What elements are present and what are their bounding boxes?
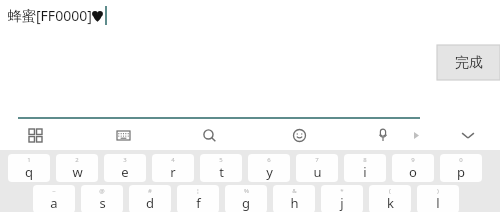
staticText: 6 [267,156,271,164]
staticText: ( [389,187,391,195]
button[interactable]: 完成 [437,45,500,80]
staticText: & [292,187,297,195]
staticText: o [409,163,417,181]
button[interactable]: Emoji [286,124,312,146]
staticText: a [50,194,58,212]
button[interactable]: ) [417,185,459,212]
staticText: @ [99,187,105,195]
staticText: # [148,187,152,195]
staticText: g [242,194,250,212]
staticText: s [99,194,106,212]
staticText: ~ [52,187,56,195]
staticText: i [363,163,367,181]
button[interactable]: 蜂蜜[FF0000] [8,6,107,25]
button[interactable]: % [225,185,267,212]
staticText: y [266,163,273,181]
staticText: j [340,194,344,212]
button[interactable]: ¦ [177,185,219,212]
button[interactable]: @ [81,185,123,212]
staticText: d [146,194,154,212]
button[interactable]: 9 [392,154,434,182]
staticText: 5 [219,156,223,164]
staticText: p [457,163,465,181]
button[interactable]: 0 [440,154,482,182]
staticText: u [313,163,322,181]
staticText: w [72,163,83,181]
button[interactable]: & [273,185,315,212]
staticText: t [219,163,224,181]
staticText: ¦ [196,187,200,195]
button[interactable]: Hide keyboard [455,124,481,146]
staticText: 7 [315,156,319,164]
staticText: h [290,194,299,212]
staticText: f [196,194,201,212]
staticText: 1 [27,156,31,164]
button[interactable]: ~ [33,185,75,212]
button[interactable]: 3 [104,154,146,182]
button[interactable]: Keyboard [110,125,136,145]
button[interactable]: # [129,185,171,212]
staticText: q [25,163,33,181]
button[interactable]: 7 [296,154,338,182]
staticText: r [170,163,176,181]
staticText: l [436,194,440,212]
staticText: * [340,187,344,195]
staticText: 2 [75,156,79,164]
staticText: 9 [411,156,415,164]
button[interactable]: More [408,126,424,144]
button[interactable]: 6 [248,154,290,182]
staticText: 0 [459,156,463,164]
button[interactable]: ( [369,185,411,212]
button[interactable]: Search [196,124,222,146]
staticText: 蜂蜜[FF0000] [8,6,92,25]
staticText: 完成 [455,54,483,72]
staticText: ) [437,187,439,195]
staticText: % [244,187,249,195]
button[interactable]: 4 [152,154,194,182]
staticText: k [387,194,394,212]
button[interactable]: 8 [344,154,386,182]
button[interactable]: * [321,185,363,212]
button[interactable]: Apps [22,124,48,146]
staticText: 8 [363,156,367,164]
staticText: 3 [123,156,127,164]
button[interactable]: 1 [8,154,50,182]
staticText: e [121,163,129,181]
staticText: 4 [171,156,175,164]
button[interactable]: 5 [200,154,242,182]
button[interactable]: Voice input [370,124,396,146]
button[interactable]: 2 [56,154,98,182]
